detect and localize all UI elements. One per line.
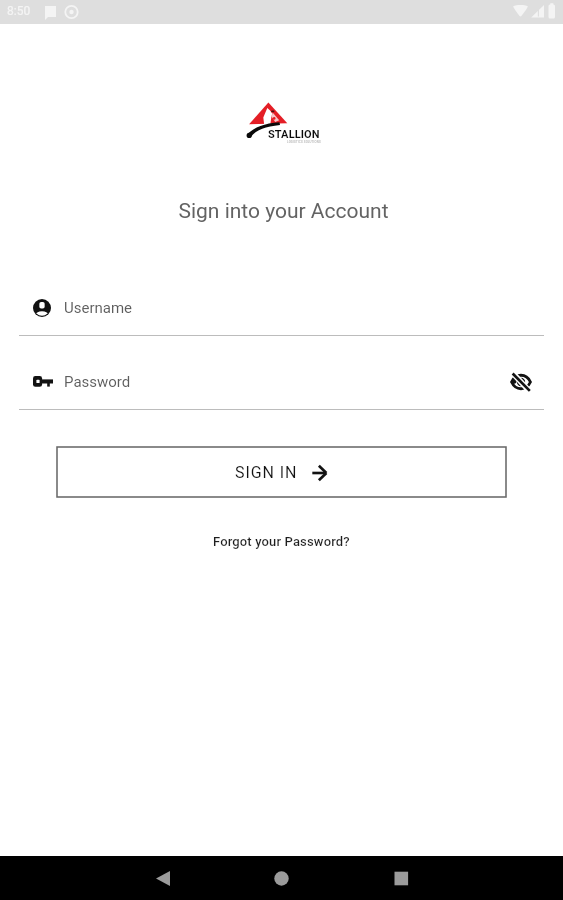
staticText: SIGN IN — [235, 463, 298, 482]
staticText: Sign into your Account — [2, 199, 563, 224]
button[interactable]: Show password — [507, 368, 535, 396]
button[interactable]: Forgot your Password? — [207, 530, 356, 553]
button[interactable]: Back — [139, 856, 187, 900]
button[interactable] — [19, 287, 544, 336]
staticText: Forgot your Password? — [213, 534, 350, 549]
button[interactable]: SIGN IN — [57, 447, 506, 497]
staticText: Username — [64, 299, 133, 317]
button[interactable]: Recent apps — [377, 856, 425, 900]
button[interactable] — [19, 361, 544, 410]
staticText: LOGISTICS SOLUTIONS — [287, 140, 321, 143]
staticText: Password — [64, 373, 131, 391]
staticText: STALLION — [268, 128, 320, 141]
button[interactable]: Home — [257, 856, 305, 900]
staticText: 8:50 — [7, 4, 31, 18]
